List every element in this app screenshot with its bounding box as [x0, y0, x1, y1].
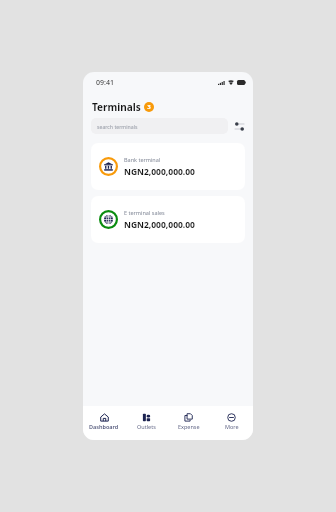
staticText: Bank terminal — [124, 156, 161, 163]
button[interactable]: Expense — [167, 406, 210, 440]
staticText: 09:41 — [96, 78, 114, 88]
button[interactable]: E terminal sales — [91, 196, 245, 243]
button[interactable]: Filter — [233, 120, 245, 132]
staticText: NGN2,000,000.00 — [124, 166, 195, 178]
staticText: E terminal sales — [124, 209, 165, 216]
button[interactable]: Outlets — [125, 406, 167, 440]
staticText: search terminals — [97, 123, 138, 130]
button[interactable]: search terminals — [91, 118, 228, 134]
staticText: Dashboard — [89, 423, 119, 430]
button[interactable]: Dashboard — [83, 406, 125, 440]
staticText: Outlets — [137, 423, 156, 430]
staticText: More — [225, 423, 239, 430]
staticText: 3 — [147, 103, 151, 111]
button[interactable]: More — [210, 406, 253, 440]
button[interactable]: Bank terminal — [91, 143, 245, 190]
staticText: Terminals — [92, 100, 141, 114]
staticText: NGN2,000,000.00 — [124, 219, 195, 231]
staticText: Expense — [178, 423, 200, 430]
